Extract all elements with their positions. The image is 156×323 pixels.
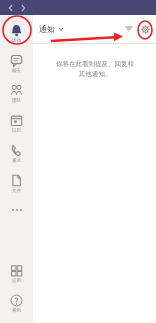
staticText: 日历 [12,128,21,134]
staticText: 应用 [12,278,21,284]
button[interactable]: Back [5,2,17,14]
button[interactable]: Filter [122,22,136,36]
staticText: 你将在此看到提及、回复和 其他通知。 [56,60,134,78]
button[interactable]: 日历 [0,109,33,139]
button[interactable]: 帮助 [0,289,33,319]
staticText: 通话 [12,158,21,164]
button[interactable]: 活动 [0,19,33,49]
button[interactable]: Forward [17,2,29,14]
staticText: 活动 [12,38,21,44]
button[interactable]: More [0,199,33,221]
staticText: 文件 [12,188,21,194]
staticText: 团队 [12,98,21,104]
button[interactable]: 文件 [0,169,33,199]
button[interactable]: 应用 [0,259,33,289]
button[interactable]: 团队 [0,79,33,109]
button[interactable]: 通话 [0,139,33,169]
button[interactable]: 聊天 [0,49,33,79]
button[interactable]: 通知 [39,24,64,34]
staticText: 通知 [39,24,55,34]
staticText: 聊天 [12,68,21,74]
staticText: 帮助 [12,308,21,314]
button[interactable]: Settings [138,22,152,36]
